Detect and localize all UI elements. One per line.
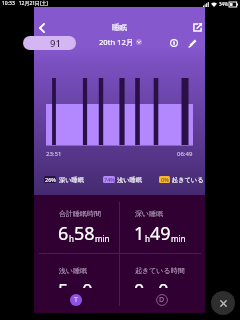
staticText: 浅い睡眠: [117, 176, 142, 183]
staticText: 1: [134, 221, 145, 246]
staticText: 91: [50, 37, 61, 50]
staticText: 浅い睡眠: [59, 266, 88, 275]
staticText: 0%: [161, 176, 169, 183]
button[interactable]: 起きている時間: [120, 253, 205, 288]
staticText: 6: [58, 221, 69, 246]
button[interactable]: 0%: [159, 176, 191, 183]
staticText: 34%: [219, 1, 228, 7]
staticText: min: [95, 233, 110, 244]
staticText: 23:51: [46, 150, 62, 158]
staticText: 睡眠: [112, 23, 128, 33]
button[interactable]: Choose date: [136, 39, 142, 45]
button[interactable]: 深い睡眠: [120, 196, 205, 253]
staticText: 0 0: [134, 278, 169, 288]
staticText: 5 0: [58, 278, 93, 288]
staticText: 10:33 12月21日(土): [2, 0, 49, 7]
staticText: h: [69, 233, 74, 244]
button[interactable]: 合計睡眠時間: [34, 196, 119, 253]
staticText: 合計睡眠時間: [59, 209, 101, 218]
staticText: 深い睡眠: [59, 176, 84, 183]
staticText: 20th 12月: [99, 37, 134, 47]
button[interactable]: 74%: [103, 176, 128, 183]
staticText: h: [145, 233, 150, 244]
staticText: 26%: [45, 176, 56, 183]
button[interactable]: Share: [190, 20, 204, 34]
button[interactable]: Back: [32, 18, 52, 38]
staticText: 49: [150, 221, 171, 246]
button[interactable]: 91: [23, 36, 76, 50]
button[interactable]: Info: [167, 36, 181, 50]
staticText: 74%: [104, 176, 115, 183]
button[interactable]: 浅い睡眠: [34, 253, 119, 288]
staticText: D: [159, 295, 165, 305]
staticText: min: [171, 233, 186, 244]
staticText: 58: [74, 221, 95, 246]
staticText: 起きている時間: [135, 266, 185, 275]
button[interactable]: 26%: [44, 176, 69, 183]
staticText: T: [74, 295, 78, 305]
button[interactable]: Close: [211, 291, 235, 315]
staticText: 深い睡眠: [135, 209, 164, 218]
staticText: 06:49: [177, 150, 193, 158]
staticText: 起きている: [172, 176, 204, 183]
button[interactable]: Edit: [185, 36, 199, 50]
